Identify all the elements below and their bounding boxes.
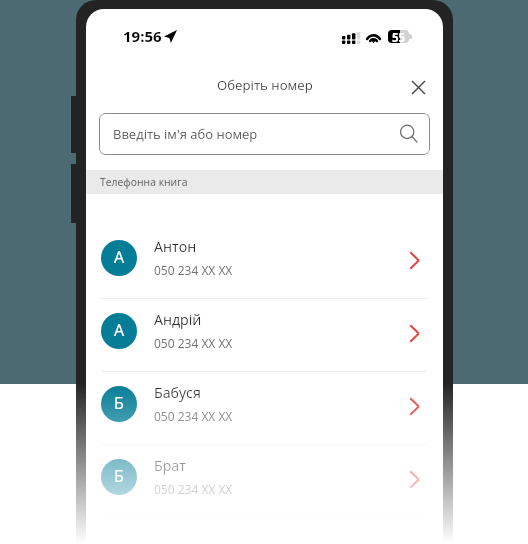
staticText: Телефонна книга bbox=[100, 175, 188, 189]
staticText: Б bbox=[114, 465, 124, 487]
staticText: Оберіть номер bbox=[217, 76, 313, 94]
staticText: 050 234 XX XX bbox=[154, 335, 233, 351]
button[interactable]: Б bbox=[86, 440, 443, 513]
staticText: 050 234 XX XX bbox=[154, 408, 233, 424]
staticText: Бабуся bbox=[154, 383, 201, 402]
staticText: Антон bbox=[154, 237, 197, 256]
staticText: Введіть ім'я або номер bbox=[113, 125, 258, 143]
button[interactable]: А bbox=[86, 221, 443, 294]
staticText: 050 234 XX XX bbox=[154, 262, 233, 278]
staticText: 19:56 bbox=[123, 26, 162, 46]
button[interactable]: Б bbox=[86, 367, 443, 440]
staticText: Б bbox=[114, 392, 124, 414]
staticText: А bbox=[114, 319, 125, 341]
staticText: Брат bbox=[154, 456, 186, 475]
staticText: 050 234 XX XX bbox=[154, 481, 233, 497]
button[interactable]: А bbox=[86, 294, 443, 367]
button[interactable]: Close bbox=[403, 72, 433, 102]
staticText: Андрій bbox=[154, 310, 202, 329]
staticText: А bbox=[114, 246, 125, 268]
button[interactable]: Введіть ім'я або номер bbox=[99, 113, 430, 155]
staticText: 55 bbox=[392, 30, 406, 43]
